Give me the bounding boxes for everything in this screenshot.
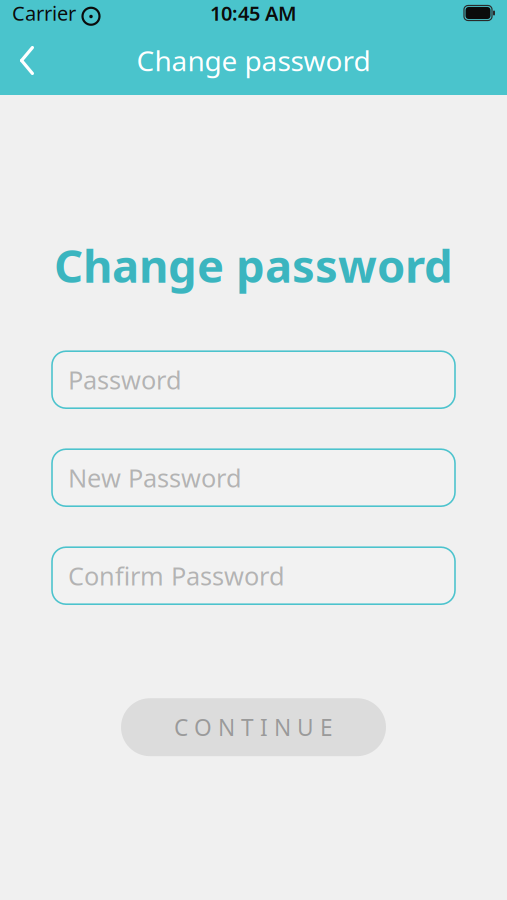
staticText: C O N T I N U E [174, 712, 333, 742]
staticText: 10:45 AM [210, 0, 297, 26]
button[interactable]: New Password [52, 449, 455, 506]
button[interactable]: C O N T I N U E [121, 698, 386, 756]
button[interactable]: Back [0, 33, 54, 87]
staticText: Password [68, 363, 182, 396]
button[interactable]: Password [52, 351, 455, 408]
staticText: Confirm Password [68, 559, 285, 592]
staticText: New Password [68, 461, 242, 494]
button[interactable]: Confirm Password [52, 547, 455, 604]
staticText: Change password [136, 42, 370, 79]
staticText: Carrier [12, 0, 76, 26]
staticText: Change password [54, 235, 453, 295]
